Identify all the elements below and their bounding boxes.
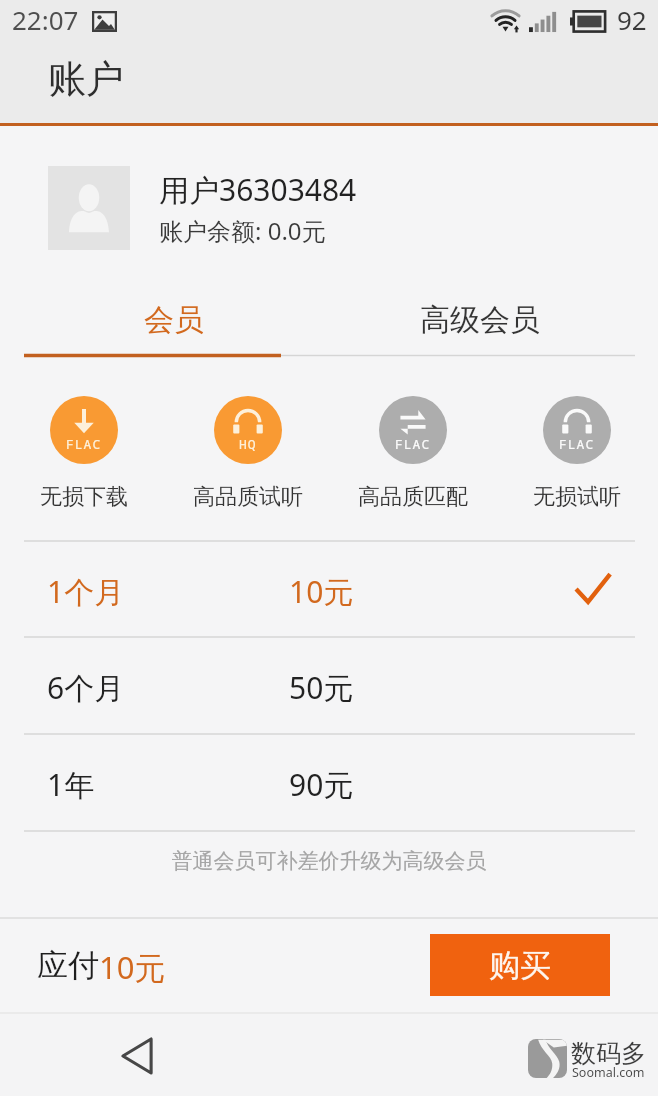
staticText: 50元	[289, 667, 354, 708]
button[interactable]: FLAC	[507, 396, 647, 511]
staticText: 10元	[99, 946, 166, 988]
staticText: 22:07	[12, 2, 79, 37]
staticText: 90元	[289, 764, 354, 805]
button[interactable]: 购买	[430, 934, 610, 996]
staticText: 6个月	[47, 667, 125, 708]
staticText: Soomal.com	[572, 1064, 645, 1081]
staticText: 购买	[489, 946, 551, 985]
staticText: 应付	[37, 946, 99, 985]
staticText: 1个月	[47, 571, 125, 612]
staticText: 高级会员	[420, 301, 540, 339]
staticText: FLAC	[66, 435, 102, 453]
button[interactable]: FLAC	[343, 396, 483, 511]
staticText: FLAC	[559, 435, 595, 453]
button[interactable]: 6个月	[0, 636, 658, 732]
staticText: FLAC	[395, 435, 431, 453]
staticText: 无损下载	[40, 483, 128, 511]
button[interactable]: 高级会员	[330, 285, 630, 357]
button[interactable]: Back	[104, 1028, 170, 1080]
staticText: 数码多	[571, 1038, 646, 1069]
staticText: 高品质试听	[193, 483, 303, 511]
staticText: 会员	[144, 301, 204, 339]
staticText: 10元	[289, 571, 354, 612]
staticText: 用户36303484	[159, 169, 357, 210]
button[interactable]: HQ	[178, 396, 318, 511]
button[interactable]: 会员	[24, 285, 324, 357]
staticText: 1年	[47, 764, 95, 805]
button[interactable]: 1年	[0, 733, 658, 829]
button[interactable]: 1个月	[0, 540, 658, 636]
staticText: 无损试听	[533, 483, 621, 511]
staticText: 账户余额: 0.0元	[159, 214, 326, 247]
button[interactable]: FLAC	[14, 396, 154, 511]
staticText: HQ	[239, 435, 257, 453]
staticText: 92	[617, 2, 647, 37]
staticText: 普通会员可补差价升级为高级会员	[0, 848, 658, 874]
staticText: 高品质匹配	[358, 483, 468, 511]
staticText: 账户	[48, 55, 124, 103]
